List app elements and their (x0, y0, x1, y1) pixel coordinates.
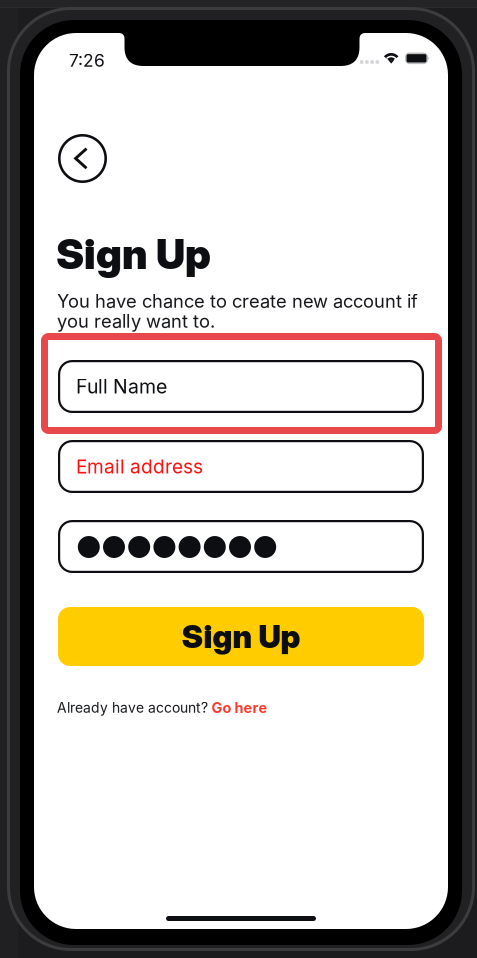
button[interactable]: Back (58, 134, 107, 183)
staticText: Sign Up (181, 617, 300, 656)
button[interactable]: Email address (58, 440, 424, 493)
button[interactable]: Go here (208, 699, 267, 716)
button[interactable]: Sign Up (58, 607, 424, 666)
button[interactable]: Full Name (41, 333, 442, 434)
staticText: Full Name (76, 375, 167, 398)
staticText: 7:26 (69, 50, 105, 71)
staticText: Sign Up (56, 229, 211, 279)
button[interactable] (58, 520, 424, 573)
staticText: You have chance to create new account if… (57, 290, 418, 332)
staticText: Email address (76, 455, 203, 478)
staticText: Go here (211, 699, 267, 716)
staticText: Already have account? (57, 699, 208, 716)
